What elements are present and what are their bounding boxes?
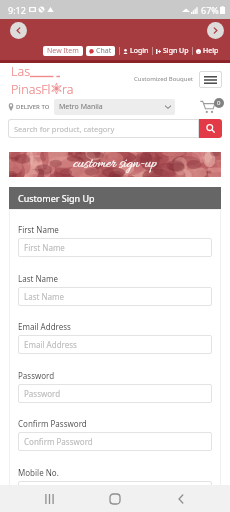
button[interactable]: Confirm Password: [18, 432, 212, 451]
button[interactable]: Chat: [86, 46, 115, 56]
button[interactable]: Las: [11, 63, 89, 95]
staticText: Login: [130, 46, 149, 56]
staticText: First Name: [18, 224, 59, 235]
staticText: Email Address: [24, 339, 77, 350]
staticText: 0: [217, 99, 221, 107]
button[interactable]: [18, 481, 212, 500]
staticText: Customer Sign Up: [18, 192, 95, 204]
button[interactable]: Login: [123, 46, 149, 56]
button[interactable]: Last Name: [18, 287, 212, 306]
staticText: ra: [62, 81, 74, 95]
staticText: Search for product, category: [14, 124, 115, 134]
staticText: PinasFl: [11, 81, 51, 95]
button[interactable]: Recents: [32, 485, 66, 512]
staticText: Help: [203, 46, 219, 56]
button[interactable]: Password: [18, 384, 212, 403]
staticText: 9:12: [8, 4, 26, 16]
button[interactable]: Help: [196, 46, 219, 56]
button[interactable]: Back: [10, 22, 27, 39]
staticText: customer sign-up: [73, 155, 157, 174]
staticText: First Name: [24, 242, 65, 253]
button[interactable]: Metro Manila: [54, 99, 175, 115]
staticText: Password: [18, 370, 55, 381]
button[interactable]: Sign Up: [156, 46, 189, 56]
staticText: Last Name: [24, 291, 65, 302]
staticText: Email Address: [18, 321, 71, 332]
button[interactable]: Search for product, category: [8, 119, 199, 138]
staticText: Las: [11, 63, 30, 80]
staticText: 67%: [201, 4, 219, 16]
button[interactable]: Forward: [207, 22, 224, 39]
button[interactable]: Email Address: [18, 335, 212, 354]
button[interactable]: Search: [199, 119, 222, 138]
button[interactable]: Back: [164, 485, 198, 512]
staticText: Password: [24, 388, 61, 399]
button[interactable]: Menu: [199, 71, 222, 88]
staticText: Last Name: [18, 273, 59, 284]
staticText: Confirm Password: [18, 418, 87, 429]
button[interactable]: Customer Sign Up: [9, 187, 221, 209]
button[interactable]: Home: [98, 485, 132, 512]
staticText: Chat: [96, 46, 112, 56]
staticText: Sign Up: [163, 46, 189, 56]
staticText: Mobile No.: [18, 467, 59, 478]
staticText: Customized Bouquet: [134, 75, 193, 83]
button[interactable]: First Name: [18, 238, 212, 257]
staticText: New Item: [47, 46, 79, 56]
staticText: Metro Manila: [59, 102, 103, 112]
button[interactable]: New Item: [43, 46, 83, 56]
button[interactable]: Cart: [200, 97, 224, 117]
staticText: DELIVER TO: [16, 103, 50, 111]
staticText: Confirm Password: [24, 436, 93, 447]
